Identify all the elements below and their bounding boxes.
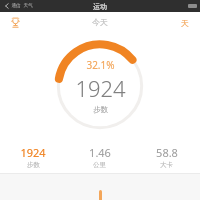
staticText: 大卡: [160, 161, 173, 169]
staticText: 58.8: [156, 145, 178, 160]
button[interactable]: Achievements: [7, 14, 24, 31]
staticText: 公里: [93, 161, 106, 169]
staticText: 步数: [93, 105, 108, 114]
staticText: 1924: [20, 145, 46, 160]
button[interactable]: 1924: [0, 140, 66, 173]
staticText: 步数: [27, 161, 40, 169]
staticText: 天: [181, 18, 189, 28]
button[interactable]: Back: [2, 1, 11, 11]
staticText: 1.46: [89, 145, 111, 160]
staticText: 通信: [11, 3, 21, 9]
staticText: 运动: [93, 2, 107, 11]
button[interactable]: Switch view: [176, 14, 193, 31]
button[interactable]: 58.8: [133, 140, 200, 173]
button[interactable]: 今天: [92, 17, 108, 27]
button[interactable]: 1.46: [66, 140, 133, 173]
staticText: 1924: [75, 73, 126, 103]
staticText: 天气: [23, 3, 33, 9]
staticText: 32.1%: [86, 58, 115, 72]
staticText: 今天: [92, 17, 108, 27]
